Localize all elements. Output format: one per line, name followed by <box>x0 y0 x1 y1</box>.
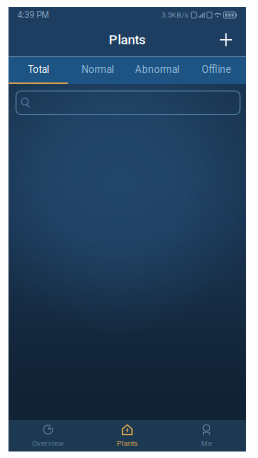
staticText: Offline <box>202 64 231 75</box>
button[interactable]: Plants <box>88 420 167 451</box>
button[interactable]: Abnormal <box>127 56 187 84</box>
button[interactable]: Total <box>8 56 68 84</box>
button[interactable]: Add <box>210 23 242 56</box>
button[interactable]: Offline <box>187 56 246 84</box>
button[interactable]: Normal <box>68 56 127 84</box>
staticText: 4:39 PM <box>17 10 48 20</box>
button[interactable]: Me <box>167 420 246 451</box>
staticText: Overview <box>32 439 64 448</box>
staticText: Me <box>201 439 212 448</box>
staticText: 3.5KB/s <box>161 11 188 19</box>
button[interactable]: Overview <box>8 420 88 451</box>
staticText: Total <box>28 64 49 75</box>
staticText: Normal <box>82 64 114 75</box>
staticText: Abnormal <box>135 64 179 75</box>
button[interactable]: Search <box>16 91 240 114</box>
staticText: Plants <box>109 32 146 47</box>
staticText: Plants <box>117 439 138 448</box>
